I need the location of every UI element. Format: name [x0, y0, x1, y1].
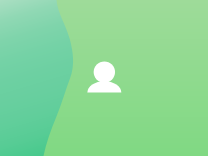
button[interactable]: Profile avatar: [0, 0, 208, 156]
